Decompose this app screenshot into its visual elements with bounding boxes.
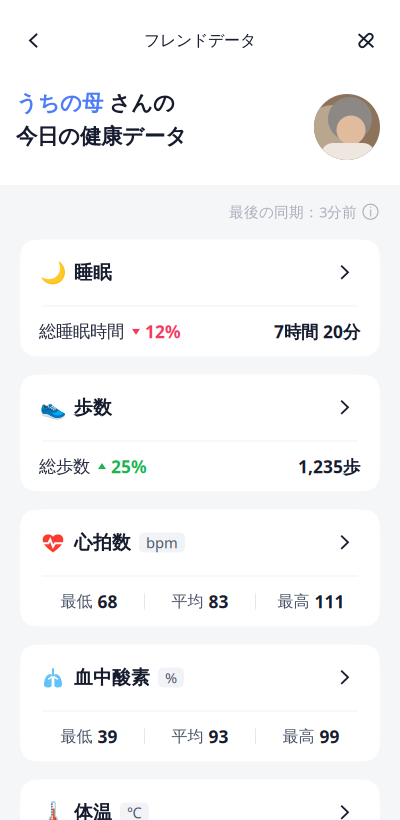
staticText: 111 — [314, 590, 344, 613]
staticText: 血中酸素 — [74, 666, 150, 689]
staticText: 最高 — [282, 727, 314, 746]
staticText: 👟 — [39, 395, 66, 420]
staticText: 歩数 — [74, 396, 112, 419]
staticText: % — [165, 668, 177, 687]
staticText: 最高 — [277, 592, 309, 611]
staticText: 🌙 — [39, 260, 66, 285]
staticText: 93 — [208, 725, 228, 748]
staticText: 99 — [319, 725, 339, 748]
staticText: ℃ — [127, 803, 142, 820]
staticText: 総睡眠時間 — [39, 321, 124, 342]
button[interactable]: リンクを解除 — [344, 18, 388, 62]
staticText: うちの母 — [16, 90, 103, 116]
staticText: 39 — [97, 725, 117, 748]
staticText: 総歩数 — [39, 456, 90, 477]
staticText: 体温 — [74, 801, 112, 820]
button[interactable]: 血中酸素 — [20, 644, 380, 761]
button[interactable]: 心拍数 — [20, 509, 380, 626]
button[interactable]: 戻る — [12, 18, 56, 62]
staticText: 最後の同期：3分前 — [229, 202, 357, 221]
staticText: 🌡️ — [39, 800, 66, 820]
staticText: 平均 — [171, 727, 203, 746]
staticText: フレンドデータ — [144, 31, 256, 50]
staticText: 68 — [97, 590, 117, 613]
staticText: 最低 — [60, 727, 92, 746]
staticText: 最低 — [60, 592, 92, 611]
staticText: i — [369, 204, 372, 220]
staticText: さんの — [103, 90, 175, 116]
staticText: 今日の健康データ — [16, 123, 187, 149]
staticText: bpm — [146, 533, 178, 552]
button[interactable]: 🌙 — [20, 239, 380, 356]
button[interactable]: 🌡️ — [20, 779, 380, 820]
staticText: 12% — [145, 320, 181, 343]
staticText: 睡眠 — [74, 261, 112, 284]
staticText: 25% — [111, 455, 147, 478]
staticText: 1,235歩 — [298, 455, 360, 478]
staticText: 83 — [208, 590, 228, 613]
staticText: 平均 — [171, 592, 203, 611]
staticText: 心拍数 — [74, 531, 131, 554]
button[interactable]: 👟 — [20, 374, 380, 491]
staticText: 7時間 20分 — [274, 320, 360, 343]
